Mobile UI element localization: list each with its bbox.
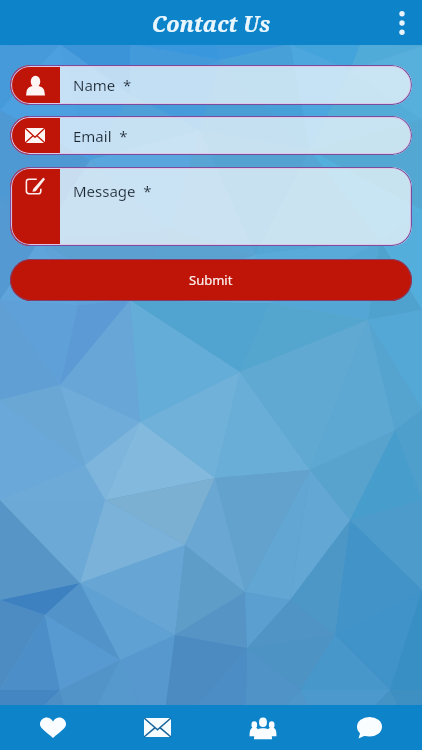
button[interactable]: Chat (316, 705, 422, 750)
staticText: Name * (73, 75, 132, 95)
button[interactable]: Message * (10, 167, 412, 246)
button[interactable]: Mail (105, 705, 210, 750)
button[interactable]: Contacts (210, 705, 316, 750)
staticText: Message * (73, 181, 152, 201)
button[interactable]: Submit (10, 259, 412, 301)
button[interactable]: More options (382, 3, 422, 43)
staticText: Contact Us (0, 9, 422, 38)
staticText: Submit (189, 271, 233, 289)
button[interactable]: Favorites (0, 705, 105, 750)
button[interactable]: Name * (10, 65, 412, 105)
staticText: Email * (73, 126, 128, 146)
button[interactable]: Email * (10, 116, 412, 155)
